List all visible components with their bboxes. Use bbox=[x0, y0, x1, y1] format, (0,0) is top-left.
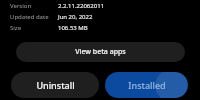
button[interactable]: Uninstall bbox=[11, 72, 99, 98]
staticText: Version bbox=[10, 2, 58, 10]
staticText: Uninstall bbox=[36, 79, 75, 91]
staticText: Updated date bbox=[10, 13, 58, 21]
staticText: 2.2.11.22062011 bbox=[58, 2, 105, 10]
staticText: Installed bbox=[128, 79, 166, 91]
staticText: 106.53 MB bbox=[58, 24, 88, 32]
staticText: Size bbox=[10, 24, 58, 32]
button[interactable]: Installed bbox=[105, 72, 188, 98]
staticText: Jun 20, 2022 bbox=[58, 13, 93, 21]
staticText: View beta apps bbox=[75, 47, 126, 57]
button[interactable]: View beta apps bbox=[16, 42, 185, 62]
